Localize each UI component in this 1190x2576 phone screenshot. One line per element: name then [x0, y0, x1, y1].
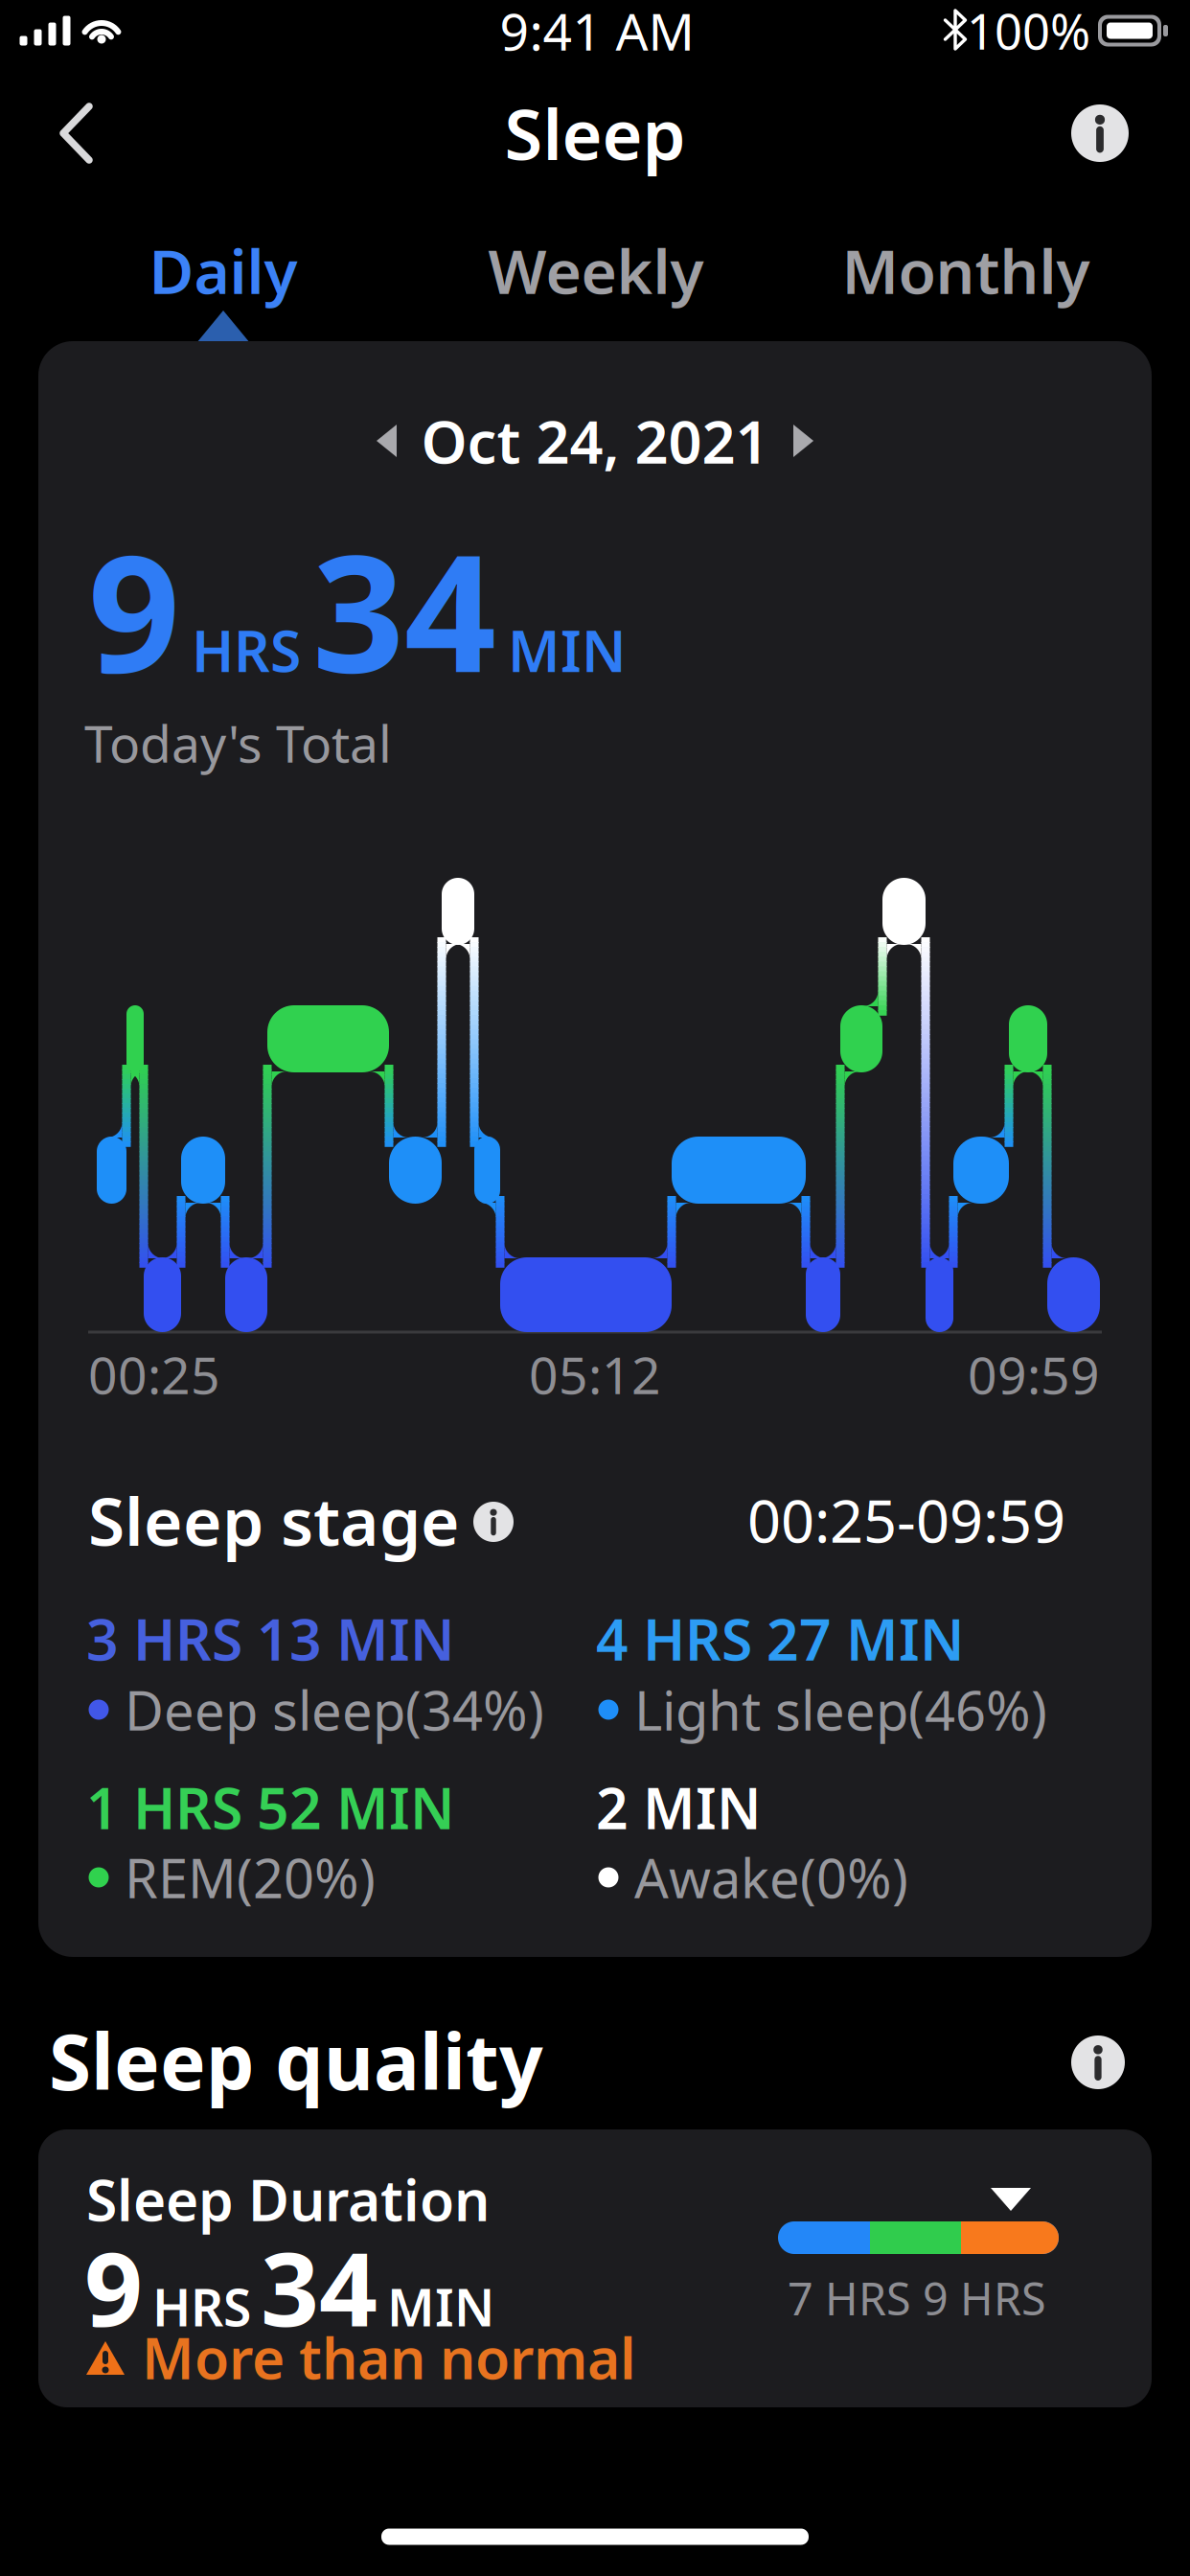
staticText: 05:12	[529, 1340, 661, 1408]
staticText: 34	[261, 2219, 378, 2354]
staticText: 4 HRS 27 MIN	[596, 1601, 965, 1676]
staticText: Sleep	[504, 87, 686, 179]
button[interactable]: Sleep quality info	[1071, 2035, 1125, 2089]
staticText: Light sleep(46%)	[634, 1674, 1047, 1745]
staticText: Awake(0%)	[634, 1842, 908, 1913]
staticText: Deep sleep(34%)	[125, 1674, 544, 1745]
staticText: Sleep stage	[88, 1476, 460, 1564]
button[interactable]: Weekly	[471, 237, 721, 304]
staticText: Sleep Duration	[86, 2162, 490, 2237]
button[interactable]: Info	[1071, 104, 1129, 162]
button[interactable]: Previous day	[375, 424, 400, 458]
staticText: Daily	[149, 230, 297, 311]
staticText: 9:41 AM	[500, 0, 694, 65]
staticText: Sleep quality	[49, 2010, 543, 2111]
button[interactable]: Expand	[991, 2186, 1031, 2213]
staticText: HRS	[152, 2272, 251, 2340]
button[interactable]: Back	[57, 102, 99, 165]
staticText: 00:25	[88, 1340, 220, 1408]
staticText: 7 HRS 9 HRS	[788, 2268, 1046, 2328]
button[interactable]: Monthly	[832, 237, 1100, 304]
staticText: 00:25-09:59	[747, 1481, 1065, 1559]
staticText: 9	[84, 2219, 143, 2354]
staticText: 100%	[967, 0, 1090, 63]
staticText: Monthly	[842, 230, 1090, 311]
staticText: HRS	[192, 613, 301, 688]
button[interactable]: Daily	[99, 237, 348, 304]
staticText: 1 HRS 52 MIN	[86, 1770, 455, 1845]
staticText: MIN	[387, 2272, 494, 2340]
staticText: 9	[88, 503, 180, 716]
staticText: 34	[312, 503, 496, 716]
staticText: More than normal	[142, 2320, 636, 2395]
staticText: REM(20%)	[125, 1842, 376, 1913]
button[interactable]: Sleep stage info	[473, 1502, 514, 1542]
button[interactable]: Next day	[790, 424, 815, 458]
staticText: Weekly	[488, 230, 704, 311]
staticText: MIN	[508, 613, 627, 688]
staticText: 3 HRS 13 MIN	[86, 1601, 455, 1676]
staticText: 2 MIN	[596, 1770, 762, 1845]
staticText: 09:59	[968, 1340, 1100, 1408]
staticText: Today's Total	[84, 709, 392, 777]
staticText: Oct 24, 2021	[421, 402, 769, 480]
